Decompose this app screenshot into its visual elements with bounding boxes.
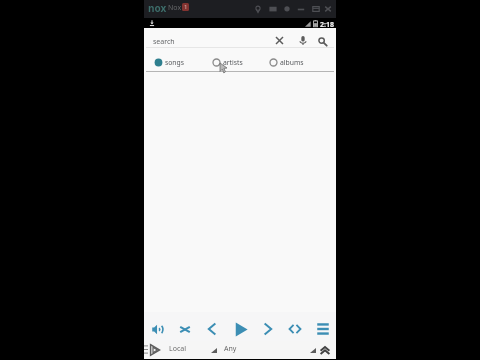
button[interactable]: Maximize <box>310 3 321 14</box>
button[interactable]: Previous <box>201 318 223 340</box>
staticText: artists <box>223 58 243 67</box>
button[interactable]: artists <box>212 55 243 69</box>
staticText: songs <box>165 58 185 67</box>
button[interactable]: Repeat <box>284 318 306 340</box>
button[interactable]: Minimize <box>295 3 306 14</box>
button[interactable]: Close <box>322 3 333 14</box>
button[interactable]: Location <box>252 3 263 14</box>
button[interactable]: Playlist <box>312 318 334 340</box>
staticText: Nox <box>168 3 182 13</box>
button[interactable]: Shuffle <box>174 318 196 340</box>
staticText: Local <box>169 344 186 354</box>
button[interactable]: Volume <box>147 318 169 340</box>
button[interactable]: Search <box>316 35 329 48</box>
button[interactable]: Play <box>230 318 252 340</box>
staticText: nox <box>148 1 167 15</box>
button[interactable]: Screenshot <box>267 3 278 14</box>
staticText: Any <box>224 344 237 354</box>
button[interactable]: Clear <box>273 34 286 47</box>
button[interactable]: Settings <box>281 3 292 14</box>
staticText: 2:18 <box>320 20 334 30</box>
button[interactable]: Voice search <box>296 34 309 47</box>
button[interactable]: Next <box>257 318 279 340</box>
staticText: search <box>153 37 175 47</box>
button[interactable]: Play source <box>149 342 161 357</box>
button[interactable]: songs <box>154 55 185 69</box>
staticText: albums <box>280 58 304 67</box>
staticText: 1 <box>184 3 188 11</box>
button[interactable]: Expand <box>318 343 332 357</box>
button[interactable]: albums <box>269 55 304 69</box>
